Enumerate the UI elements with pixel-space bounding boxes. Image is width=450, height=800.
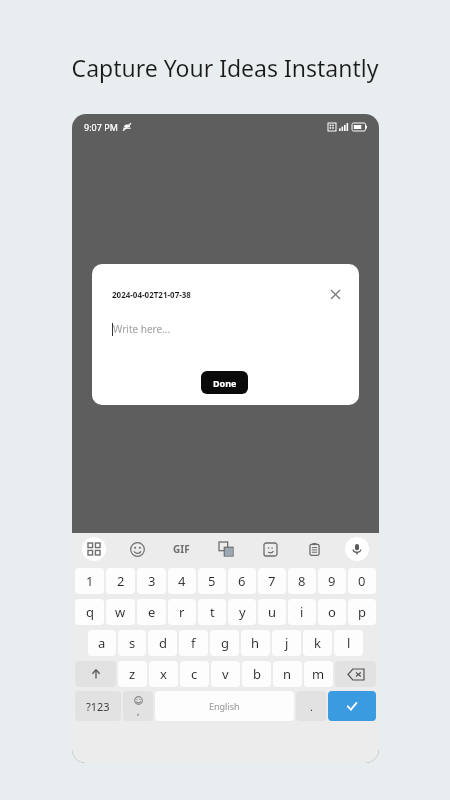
staticText: English xyxy=(209,700,240,712)
staticText: z xyxy=(129,665,136,683)
button[interactable]: q xyxy=(75,599,104,625)
button[interactable]: i xyxy=(288,599,316,625)
button[interactable]: Translate xyxy=(213,536,239,562)
button[interactable]: u xyxy=(258,599,286,625)
staticText: n xyxy=(283,665,292,683)
staticText: 2024-04-02T21-07-38 xyxy=(112,289,191,300)
staticText: 4 xyxy=(178,572,186,590)
staticText: 9 xyxy=(328,572,336,590)
button[interactable]: 4 xyxy=(168,568,196,594)
button[interactable]: . xyxy=(296,691,326,721)
button[interactable]: Stickers xyxy=(257,536,283,562)
button[interactable]: w xyxy=(106,599,135,625)
button[interactable]: h xyxy=(241,630,270,656)
staticText: d xyxy=(159,634,167,652)
button[interactable]: Clipboard xyxy=(301,536,327,562)
staticText: m xyxy=(312,665,325,683)
button[interactable]: Apps xyxy=(82,537,106,561)
staticText: a xyxy=(98,634,106,652)
staticText: q xyxy=(86,603,94,621)
button[interactable]: 3 xyxy=(137,568,166,594)
staticText: 6 xyxy=(238,572,246,590)
button[interactable]: z xyxy=(118,661,147,687)
button[interactable]: 5 xyxy=(198,568,226,594)
button[interactable]: 2 xyxy=(106,568,135,594)
staticText: s xyxy=(129,634,136,652)
button[interactable]: Emoji and comma xyxy=(123,691,153,721)
button[interactable]: r xyxy=(168,599,196,625)
staticText: Write here... xyxy=(113,322,171,336)
staticText: ?123 xyxy=(86,699,110,714)
button[interactable]: 9 xyxy=(318,568,346,594)
button[interactable]: x xyxy=(149,661,178,687)
staticText: l xyxy=(347,634,351,652)
button[interactable]: v xyxy=(211,661,240,687)
staticText: GIF xyxy=(173,542,190,556)
button[interactable]: Voice input xyxy=(345,537,369,561)
staticText: 2 xyxy=(117,572,125,590)
staticText: 7 xyxy=(268,572,276,590)
button[interactable]: y xyxy=(228,599,256,625)
staticText: Capture Your Ideas Instantly xyxy=(0,52,450,83)
staticText: v xyxy=(222,665,229,683)
button[interactable]: c xyxy=(180,661,209,687)
staticText: 8 xyxy=(298,572,306,590)
button[interactable]: 6 xyxy=(228,568,256,594)
button[interactable]: k xyxy=(303,630,332,656)
button[interactable]: Close xyxy=(325,284,345,304)
staticText: o xyxy=(328,603,336,621)
button[interactable]: 8 xyxy=(288,568,316,594)
button[interactable]: ?123 xyxy=(75,691,121,721)
staticText: j xyxy=(285,634,289,652)
staticText: 1 xyxy=(86,572,94,590)
staticText: c xyxy=(191,665,198,683)
staticText: , xyxy=(137,705,140,717)
button[interactable]: p xyxy=(348,599,376,625)
staticText: i xyxy=(300,603,304,621)
button[interactable]: f xyxy=(179,630,208,656)
staticText: x xyxy=(160,665,167,683)
button[interactable]: l xyxy=(334,630,363,656)
button[interactable]: o xyxy=(318,599,346,625)
staticText: w xyxy=(115,603,126,621)
staticText: h xyxy=(251,634,260,652)
staticText: Done xyxy=(213,377,237,389)
button[interactable]: t xyxy=(198,599,226,625)
staticText: r xyxy=(179,603,185,621)
staticText: u xyxy=(268,603,277,621)
staticText: 3 xyxy=(148,572,156,590)
button[interactable]: Enter xyxy=(328,691,376,721)
staticText: y xyxy=(239,603,246,621)
staticText: e xyxy=(148,603,156,621)
staticText: f xyxy=(191,634,196,652)
button[interactable]: GIF xyxy=(168,536,194,562)
staticText: g xyxy=(221,634,229,652)
staticText: b xyxy=(253,665,261,683)
button[interactable]: j xyxy=(272,630,301,656)
staticText: 0 xyxy=(358,572,366,590)
staticText: t xyxy=(210,603,215,621)
button[interactable]: d xyxy=(148,630,177,656)
button[interactable]: 7 xyxy=(258,568,286,594)
button[interactable]: 1 xyxy=(75,568,104,594)
button[interactable]: m xyxy=(304,661,333,687)
button[interactable]: e xyxy=(137,599,166,625)
staticText: . xyxy=(310,699,313,714)
button[interactable]: b xyxy=(242,661,271,687)
button[interactable]: Emoji xyxy=(124,536,150,562)
button[interactable]: s xyxy=(118,630,146,656)
button[interactable]: Backspace xyxy=(335,661,376,687)
button[interactable]: a xyxy=(88,630,116,656)
button[interactable]: n xyxy=(273,661,302,687)
button[interactable]: Done xyxy=(201,371,248,394)
button[interactable]: Shift xyxy=(75,661,116,687)
button[interactable]: 0 xyxy=(348,568,376,594)
button[interactable]: g xyxy=(210,630,239,656)
staticText: p xyxy=(358,603,366,621)
staticText: 9:07 PM xyxy=(84,121,118,133)
staticText: 5 xyxy=(208,572,216,590)
button[interactable]: English xyxy=(155,691,294,721)
staticText: k xyxy=(314,634,321,652)
